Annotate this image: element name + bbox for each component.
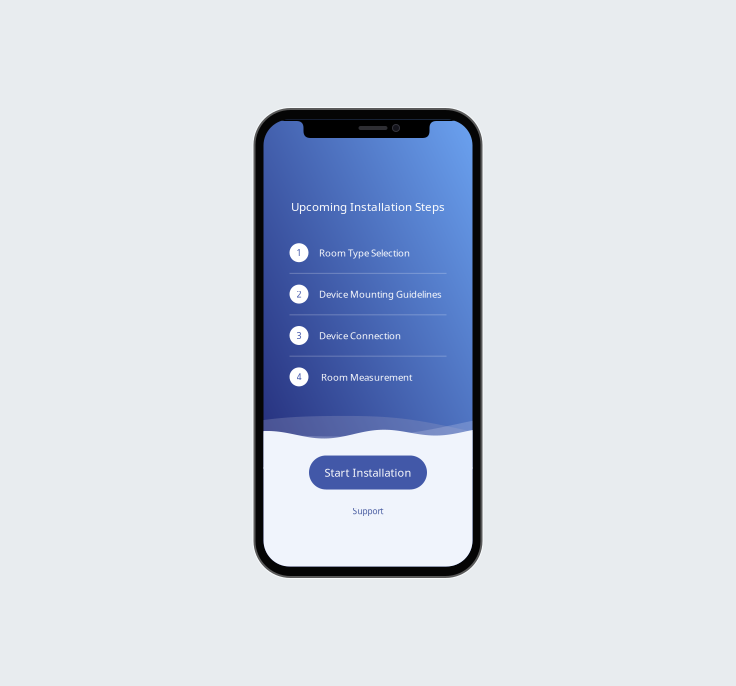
staticText: 3	[296, 329, 301, 341]
staticText: Device Connection	[319, 329, 401, 342]
button[interactable]: 3	[289, 315, 446, 356]
staticText: Room Measurement	[321, 370, 412, 383]
button[interactable]: 2	[289, 274, 446, 314]
staticText: Room Type Selection	[319, 246, 410, 259]
staticText: 2	[296, 288, 301, 300]
button[interactable]: 1	[289, 232, 446, 273]
button[interactable]: 4	[289, 357, 446, 397]
button[interactable]: Support	[338, 504, 398, 517]
staticText: 1	[296, 247, 301, 259]
staticText: Upcoming Installation Steps	[291, 199, 445, 214]
staticText: Support	[352, 505, 383, 517]
staticText: 4	[296, 371, 301, 383]
staticText: Device Mounting Guidelines	[319, 288, 442, 301]
button[interactable]: Start Installation	[309, 455, 427, 489]
staticText: Start Installation	[324, 465, 411, 480]
